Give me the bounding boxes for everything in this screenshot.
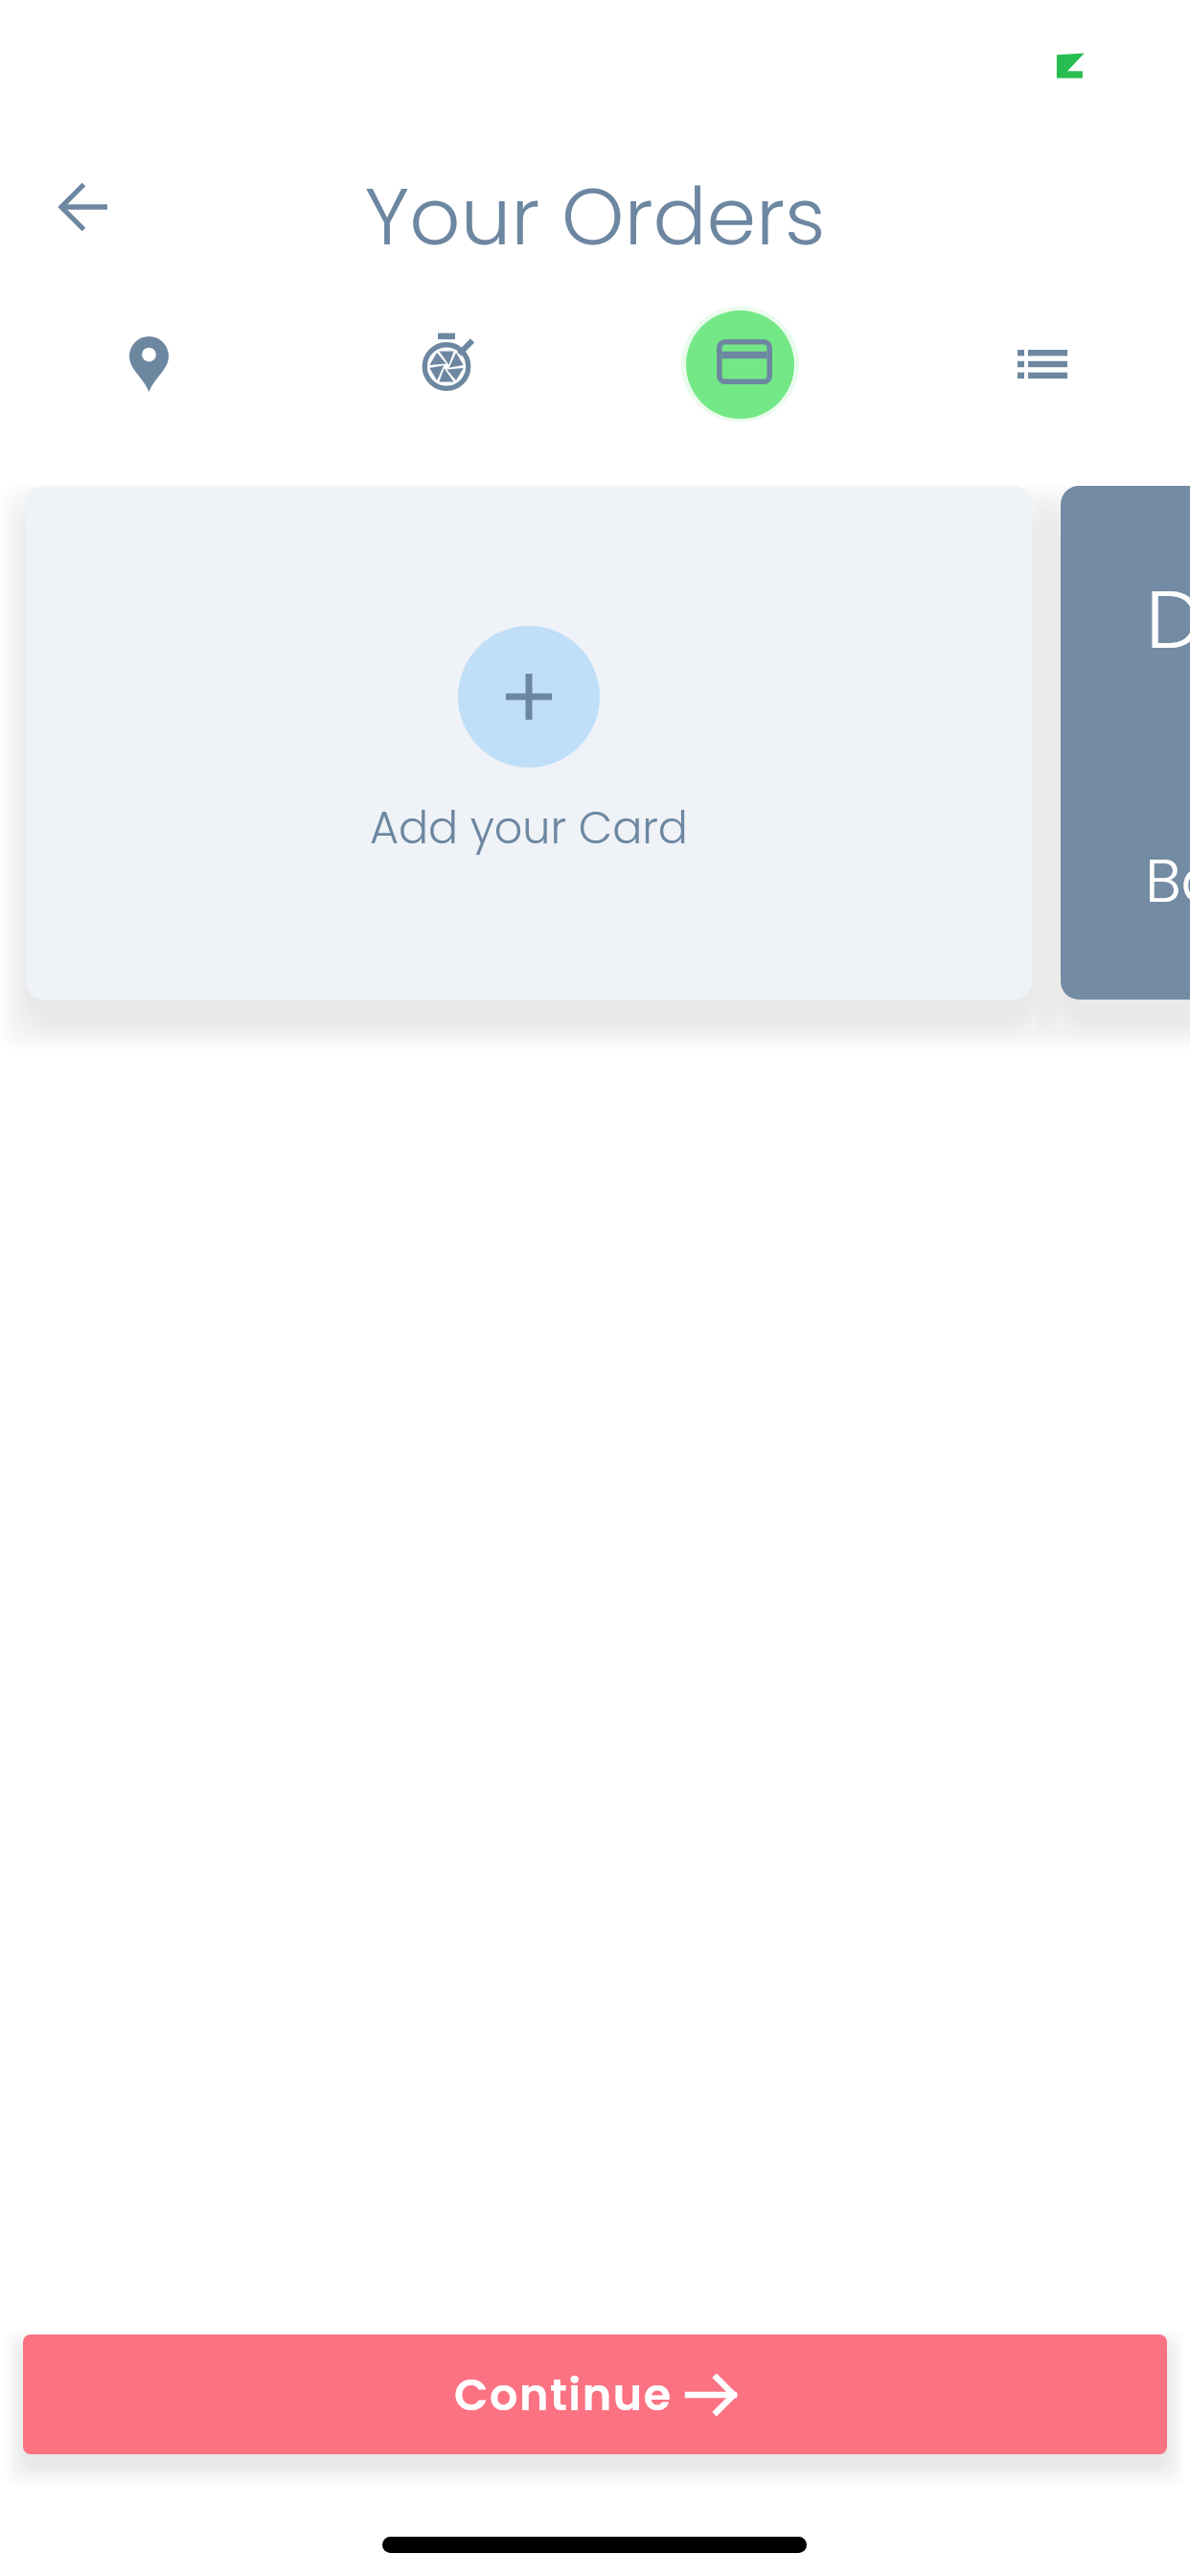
- button[interactable]: Back: [47, 172, 122, 241]
- button[interactable]: Delivery time step: [389, 307, 505, 422]
- staticText: Your Orders: [0, 161, 1190, 272]
- button[interactable]: Debit Card: [1061, 486, 1190, 1000]
- button[interactable]: Add your Card: [26, 486, 1032, 1000]
- button[interactable]: Order summary step: [984, 307, 1100, 422]
- button[interactable]: Continue: [23, 2334, 1167, 2454]
- button[interactable]: Delivery address step: [91, 307, 207, 422]
- button[interactable]: Payment step: [681, 307, 799, 422]
- staticText: Add your Card: [370, 797, 688, 859]
- staticText: Debit Card: [1146, 563, 1190, 677]
- staticText: Continue: [454, 2364, 673, 2426]
- staticText: Balance: [1145, 839, 1190, 923]
- button[interactable]: Brand logo: [1056, 52, 1085, 79]
